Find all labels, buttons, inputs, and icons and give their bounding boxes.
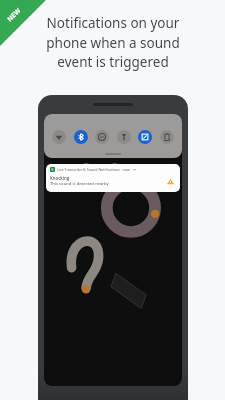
- staticText: Notifications on your phone when a sound…: [46, 14, 180, 71]
- staticText: Knocking: [50, 175, 70, 181]
- button[interactable]: Live Transcribe & Sound Notifications · …: [46, 164, 180, 192]
- button[interactable]: Bluetooth: [74, 130, 88, 144]
- button[interactable]: Wi-Fi: [52, 130, 66, 144]
- button[interactable]: Flashlight: [117, 130, 131, 144]
- staticText: Live Transcribe & Sound Notifications · …: [57, 167, 130, 172]
- staticText: NEW: [5, 6, 23, 23]
- button[interactable]: Do not disturb: [95, 130, 109, 144]
- button[interactable]: Expand: [132, 167, 137, 172]
- button[interactable]: Battery saver: [160, 130, 174, 144]
- button[interactable]: Auto rotate: [138, 130, 152, 144]
- staticText: This sound is detected nearby: [50, 181, 109, 187]
